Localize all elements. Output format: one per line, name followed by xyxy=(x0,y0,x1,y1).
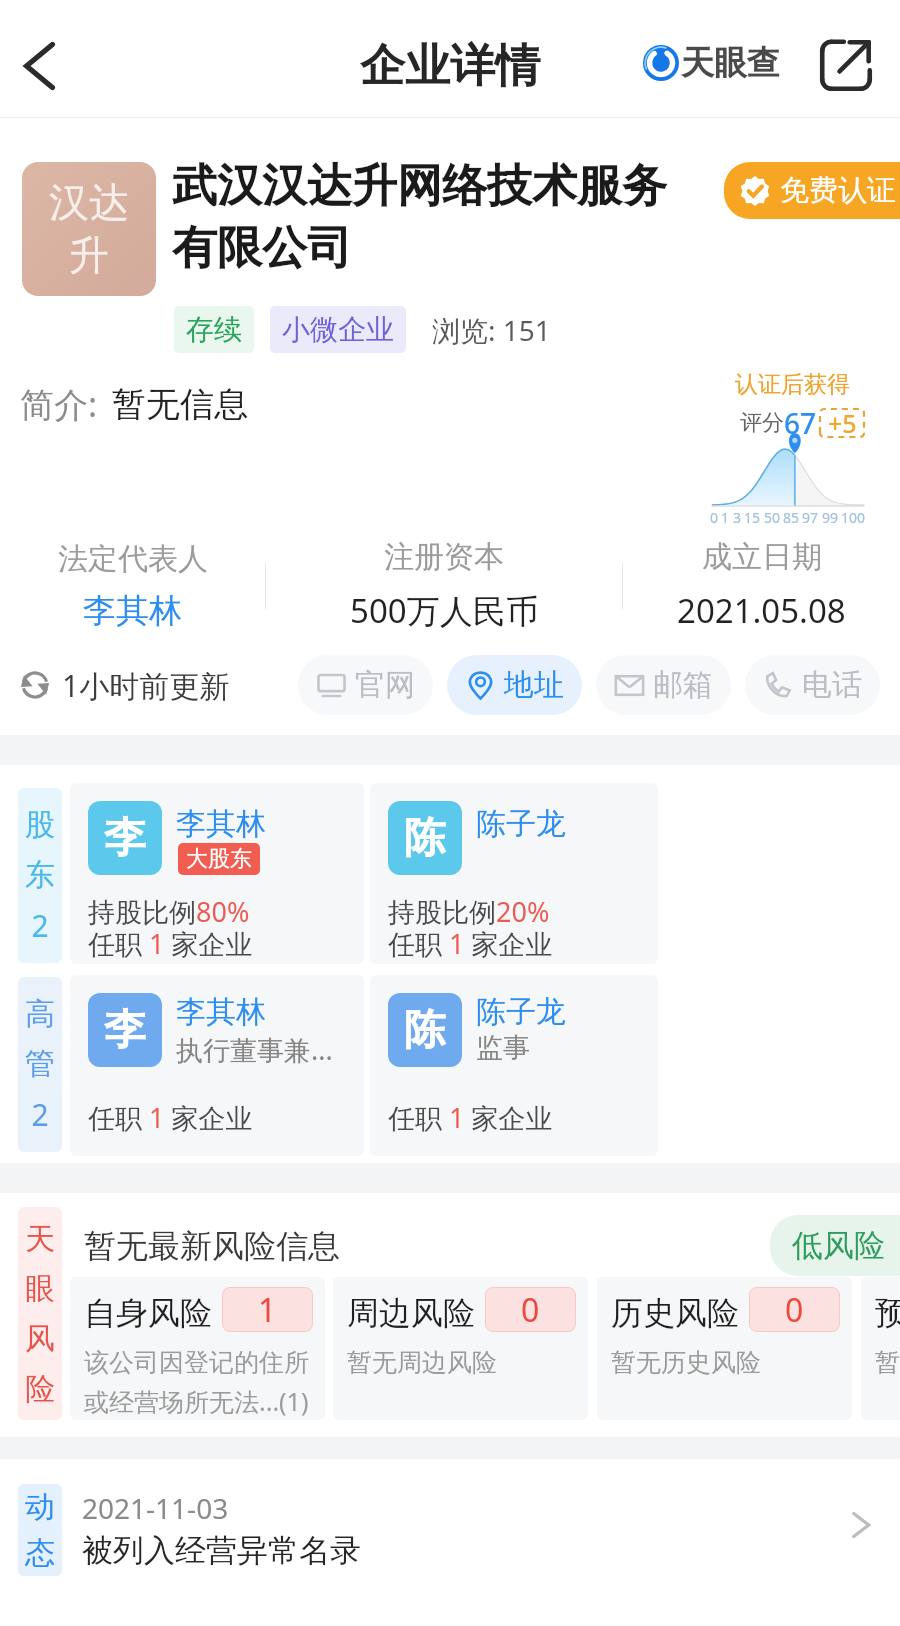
staticText: 成立日期 xyxy=(702,538,822,576)
button[interactable]: 地址 xyxy=(447,655,582,715)
staticText: 0 xyxy=(521,1288,540,1332)
button[interactable]: 自身风险 xyxy=(70,1277,325,1420)
button[interactable]: 邮箱 xyxy=(596,655,731,715)
staticText: 自身风险 xyxy=(84,1293,212,1333)
button[interactable]: 李 xyxy=(70,783,364,964)
staticText: 注册资本 xyxy=(384,538,504,576)
button[interactable]: 股 东 2 xyxy=(18,788,62,963)
staticText: 85 xyxy=(783,508,800,527)
staticText: 暂无信息 xyxy=(112,383,248,426)
staticText: 持股比例20% xyxy=(388,893,550,930)
staticText: 暂无周边风险 xyxy=(347,1347,497,1378)
staticText: 李其林 xyxy=(176,993,266,1031)
staticText: 2021.05.08 xyxy=(677,588,846,633)
staticText: 0 xyxy=(710,508,719,527)
staticText: 99 xyxy=(822,508,839,527)
staticText: 1 xyxy=(258,1288,277,1332)
staticText: 监事 xyxy=(476,1031,530,1065)
staticText: 3 xyxy=(733,508,742,527)
staticText: 100 xyxy=(841,508,866,527)
staticText: 官网 xyxy=(355,666,415,704)
button[interactable]: 陈 xyxy=(370,975,658,1156)
staticText: 任职 1 家企业 xyxy=(388,925,553,962)
staticText: 任职 1 家企业 xyxy=(388,1099,553,1136)
staticText: 执行董事兼... xyxy=(176,1031,333,1068)
button[interactable]: 周边风险 xyxy=(333,1277,588,1420)
staticText: 免费认证 xyxy=(780,172,896,209)
staticText: 简介: xyxy=(20,381,98,427)
button[interactable]: 武汉汉达升网络技术服务有限公司 xyxy=(172,158,677,277)
staticText: 1小时前更新 xyxy=(62,665,230,706)
button[interactable]: 天 眼 风 险 xyxy=(18,1207,62,1420)
staticText: 评分 xyxy=(740,409,784,437)
button[interactable]: 李 xyxy=(70,975,364,1156)
staticText: +5 xyxy=(828,406,857,440)
button[interactable]: 高 管 2 xyxy=(18,977,62,1152)
staticText: 暂无预警提醒 xyxy=(875,1347,900,1378)
staticText: 天眼查 xyxy=(681,42,780,84)
staticText: 浏览: 151 xyxy=(432,311,551,349)
staticText: 陈 xyxy=(404,812,446,865)
staticText: 邮箱 xyxy=(653,666,713,704)
button[interactable]: 小微企业 xyxy=(270,306,406,353)
staticText: 法定代表人 xyxy=(58,540,208,578)
staticText: 周边风险 xyxy=(347,1293,475,1333)
staticText: 任职 1 家企业 xyxy=(88,1099,253,1136)
button[interactable]: 电话 xyxy=(745,655,880,715)
staticText: 历史风险 xyxy=(611,1293,739,1333)
staticText: 15 xyxy=(744,508,761,527)
staticText: 李 xyxy=(104,812,146,865)
button[interactable]: 暂无最新风险信息 xyxy=(84,1226,340,1266)
button[interactable]: Tianyancha xyxy=(643,42,780,84)
staticText: 陈子龙 xyxy=(476,805,566,843)
staticText: 大股东 xyxy=(186,845,252,873)
staticText: 50 xyxy=(764,508,781,527)
staticText: 汉达升 xyxy=(47,177,131,281)
staticText: 陈子龙 xyxy=(476,993,566,1031)
staticText: 500万人民币 xyxy=(350,588,539,633)
button[interactable]: 免费认证 xyxy=(724,162,900,219)
button[interactable]: Share xyxy=(810,29,882,101)
staticText: 暂无历史风险 xyxy=(611,1347,761,1378)
staticText: 小微企业 xyxy=(282,312,394,347)
button[interactable]: 陈 xyxy=(370,783,658,964)
staticText: 任职 1 家企业 xyxy=(88,925,253,962)
staticText: 电话 xyxy=(802,666,862,704)
button[interactable]: 存续 xyxy=(174,306,254,353)
staticText: 预警提醒 xyxy=(875,1293,900,1333)
staticText: 高 管 2 xyxy=(25,995,55,1135)
staticText: 被列入经营异常名录 xyxy=(82,1531,361,1570)
staticText: 动 态 xyxy=(25,1488,55,1572)
staticText: 认证后获得 xyxy=(735,370,850,399)
staticText: 股 东 2 xyxy=(25,806,55,946)
button[interactable]: 动 态 xyxy=(0,1459,900,1626)
button[interactable]: 预警提醒 xyxy=(861,1277,900,1420)
staticText: 低风险 xyxy=(792,1226,885,1265)
staticText: 67 xyxy=(784,404,817,442)
staticText: 李其林 xyxy=(176,805,266,843)
staticText: 该公司因登记的住所 或经营场所无法...(1) xyxy=(84,1347,309,1418)
staticText: 地址 xyxy=(504,666,564,704)
staticText: 2021-11-03 xyxy=(82,1489,229,1527)
staticText: 97 xyxy=(802,508,819,527)
staticText: 天 眼 风 险 xyxy=(25,1220,55,1408)
button[interactable]: 官网 xyxy=(298,655,433,715)
button[interactable]: Company logo xyxy=(22,162,156,296)
staticText: 存续 xyxy=(186,312,242,347)
staticText: 0 xyxy=(785,1288,804,1332)
staticText: 陈 xyxy=(404,1004,446,1057)
button[interactable]: 低风险 xyxy=(770,1215,900,1276)
button[interactable]: 历史风险 xyxy=(597,1277,852,1420)
button[interactable]: Back xyxy=(0,27,78,105)
staticText: 企业详情 xyxy=(360,38,540,95)
staticText: 李其林 xyxy=(83,590,182,632)
staticText: 持股比例80% xyxy=(88,893,250,930)
staticText: 1 xyxy=(721,508,730,527)
staticText: 李 xyxy=(104,1004,146,1057)
